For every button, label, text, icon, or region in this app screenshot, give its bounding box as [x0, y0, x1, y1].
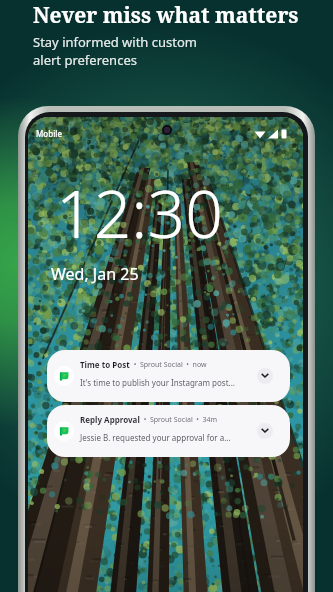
staticText: Mobile [36, 128, 63, 139]
staticText: It's time to publish your Instagram post… [80, 377, 235, 388]
staticText: Wed, Jan 25 [51, 263, 139, 285]
button[interactable]: Reply Approval [47, 405, 290, 457]
staticText: Jessie B. requested your approval for a.… [80, 432, 231, 443]
staticText: • Sprout Social • 34m [140, 415, 218, 425]
staticText: Never miss what matters [33, 1, 299, 30]
staticText: Reply Approval [80, 414, 140, 425]
button[interactable]: Expand notification [257, 423, 273, 439]
staticText: Stay informed with custom alert preferen… [33, 33, 197, 69]
button[interactable]: Expand notification [257, 368, 273, 384]
button[interactable]: Time to Post [47, 350, 290, 402]
staticText: • Sprout Social • now [130, 360, 207, 370]
staticText: 12:30 [56, 167, 223, 257]
staticText: Time to Post [80, 359, 130, 370]
